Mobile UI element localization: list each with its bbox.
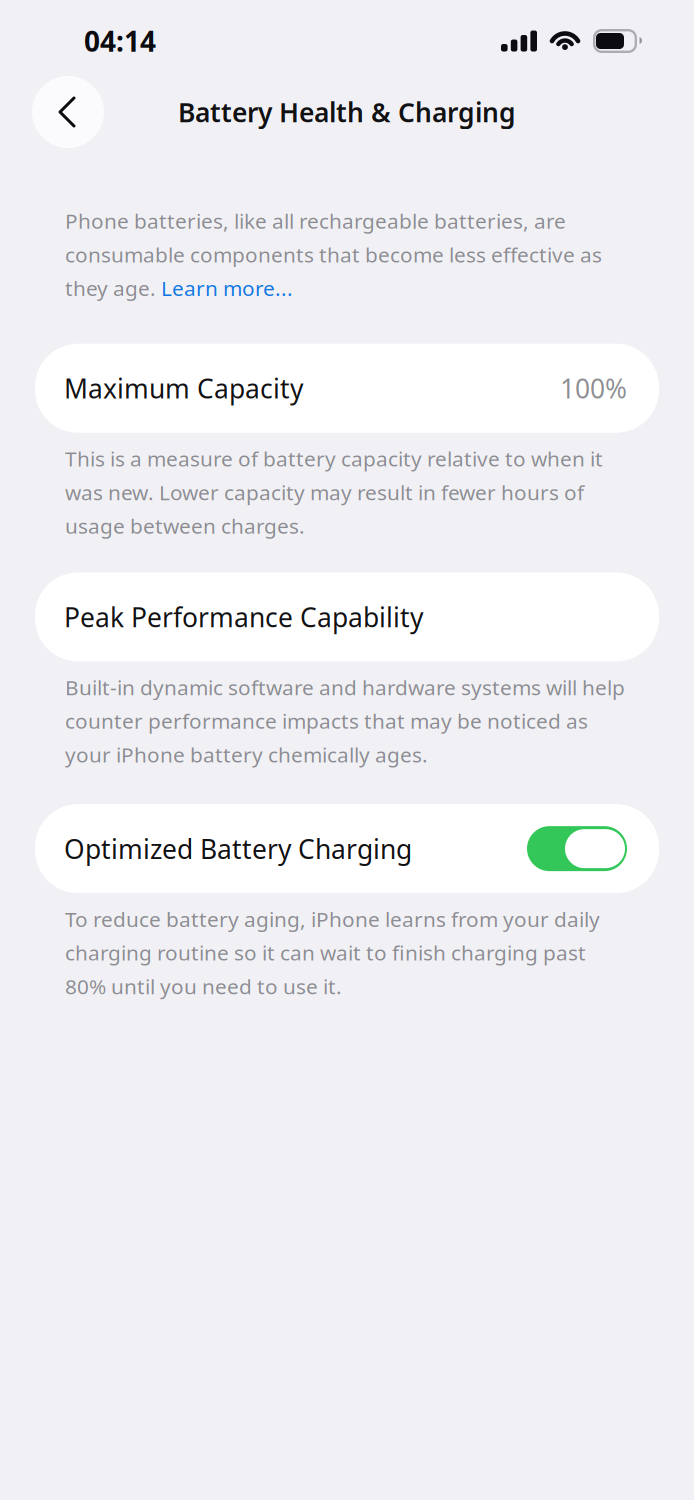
staticText: To reduce battery aging, iPhone learns f… bbox=[65, 902, 600, 1003]
staticText: Optimized Battery Charging bbox=[64, 831, 412, 867]
staticText: This is a measure of battery capacity re… bbox=[65, 442, 603, 542]
staticText: Battery Health & Charging bbox=[178, 94, 516, 130]
button[interactable]: Learn more... bbox=[161, 271, 293, 305]
staticText: Built-in dynamic software and hardware s… bbox=[65, 670, 625, 771]
staticText: 04:14 bbox=[84, 22, 156, 60]
staticText: 100% bbox=[560, 370, 627, 406]
staticText: Learn more... bbox=[161, 271, 293, 305]
button[interactable]: Optimized Battery Charging bbox=[35, 804, 659, 893]
staticText: they age. bbox=[65, 271, 161, 305]
staticText: consumable components that become less e… bbox=[65, 238, 602, 271]
button[interactable]: Back bbox=[32, 76, 104, 148]
button[interactable]: Maximum Capacity bbox=[35, 344, 659, 433]
staticText: Maximum Capacity bbox=[64, 370, 303, 406]
staticText: Peak Performance Capability bbox=[64, 599, 423, 635]
staticText: Phone batteries, like all rechargeable b… bbox=[65, 204, 566, 238]
button[interactable]: Peak Performance Capability bbox=[35, 572, 659, 661]
